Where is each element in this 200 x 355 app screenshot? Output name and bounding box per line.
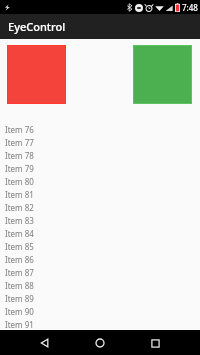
button[interactable]: Back [36,334,54,352]
button[interactable]: Home [91,334,109,352]
button[interactable]: Item 81 [0,188,200,201]
staticText: Item 91 [5,319,34,330]
staticText: 7:48 [182,2,198,13]
button[interactable]: Item 89 [0,292,200,305]
staticText: Item 83 [5,215,34,226]
staticText: Item 78 [5,150,34,161]
staticText: Item 89 [5,293,34,304]
button[interactable]: Item 91 [0,318,200,330]
button[interactable]: Item 76 [0,123,200,136]
button[interactable]: Item 87 [0,266,200,279]
button[interactable]: Item 80 [0,175,200,188]
staticText: Item 79 [5,163,34,174]
button[interactable]: Item 85 [0,240,200,253]
button[interactable]: Item 79 [0,162,200,175]
staticText: Item 77 [5,137,34,148]
staticText: Item 84 [5,228,34,239]
staticText: Item 87 [5,267,34,278]
button[interactable]: Item 86 [0,253,200,266]
staticText: Item 80 [5,176,34,187]
staticText: Item 82 [5,202,34,213]
button[interactable]: Item 88 [0,279,200,292]
staticText: Item 81 [5,189,34,200]
staticText: EyeControl [8,19,66,34]
staticText: Item 85 [5,241,34,252]
button[interactable]: Item 90 [0,305,200,318]
button[interactable]: EyeControl [0,14,200,39]
button[interactable]: Item 82 [0,201,200,214]
staticText: Item 86 [5,254,34,265]
button[interactable]: Item 84 [0,227,200,240]
button[interactable]: Item 78 [0,149,200,162]
staticText: Item 76 [5,124,34,135]
button[interactable]: Item 83 [0,214,200,227]
staticText: Item 90 [5,306,34,317]
button[interactable]: Green [133,45,192,104]
button[interactable]: Recent apps [146,334,164,352]
button[interactable]: Item 77 [0,136,200,149]
staticText: Item 88 [5,280,34,291]
